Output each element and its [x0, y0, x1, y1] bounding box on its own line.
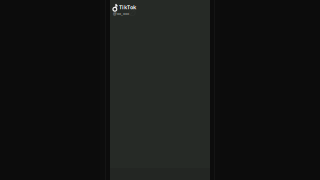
staticText: TikTok [119, 4, 136, 11]
button[interactable]: @xx_xxx [113, 11, 129, 16]
staticText: @xx_xxx [113, 11, 129, 16]
button[interactable]: Play or pause video [110, 0, 210, 180]
